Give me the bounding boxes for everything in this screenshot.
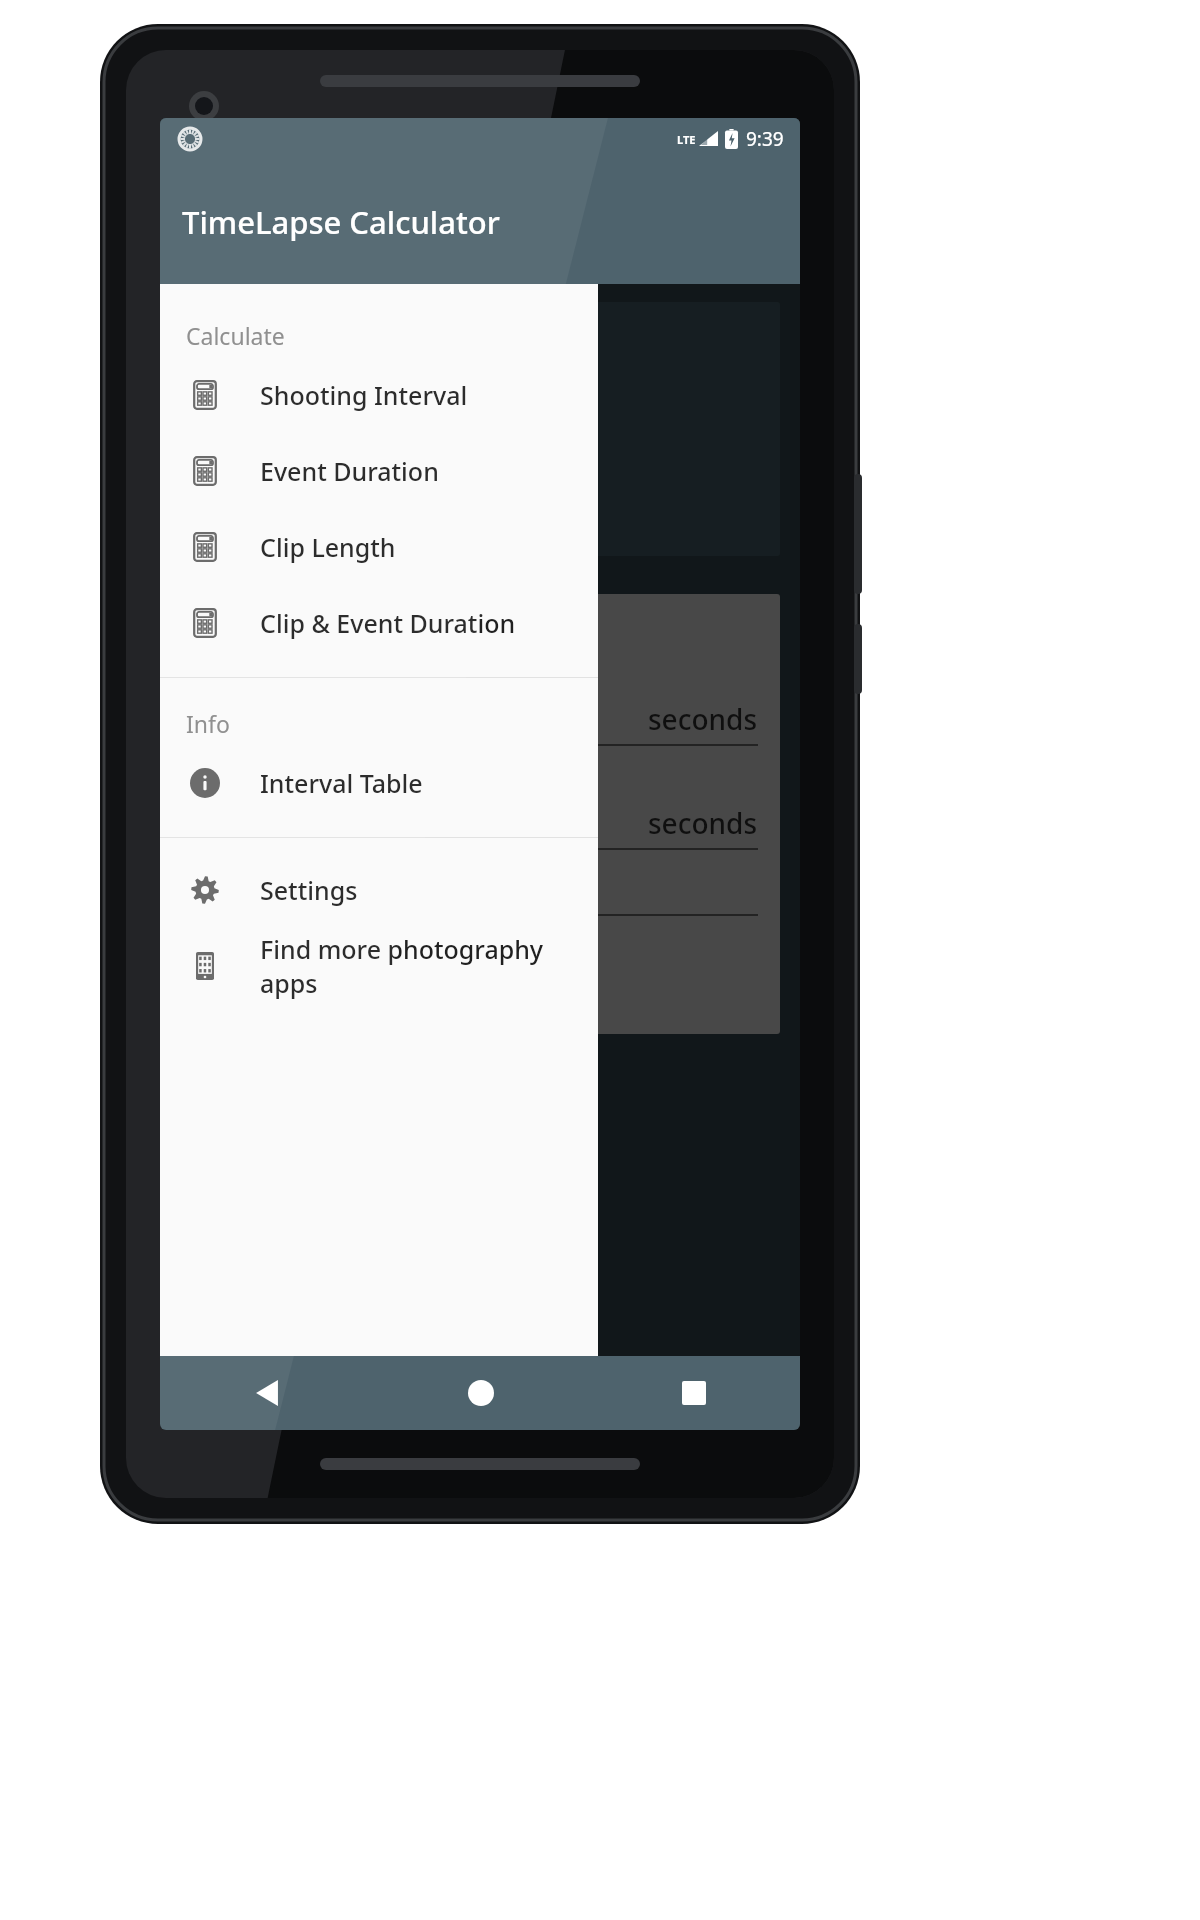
staticText: LTE (677, 132, 696, 147)
button[interactable]: Find more photography apps (160, 928, 598, 1004)
staticText: Clip & Event Duration (260, 606, 516, 640)
button[interactable]: Clip Length (160, 509, 598, 585)
staticText: TimeLapse Calculator (182, 201, 500, 243)
staticText: Find more photography apps (260, 932, 598, 1000)
staticText: Shooting Interval (260, 378, 468, 412)
staticText: Event Duration (260, 454, 439, 488)
staticText: 9:39 (746, 126, 784, 152)
button[interactable]: Home (374, 1356, 587, 1430)
staticText: seconds (648, 700, 758, 738)
staticText: seconds (648, 804, 758, 842)
staticText: Settings (260, 873, 358, 907)
button[interactable]: Clip & Event Duration (160, 585, 598, 661)
staticText: LTE (677, 132, 696, 147)
staticText: Info (186, 708, 230, 739)
button[interactable]: Recent apps (587, 1356, 800, 1430)
staticText: TimeLapse Calculator (182, 201, 500, 243)
button[interactable]: Interval Table (160, 745, 598, 821)
button[interactable]: Settings (160, 852, 598, 928)
staticText: Clip Length (260, 530, 396, 564)
button[interactable]: Shooting Interval (160, 357, 598, 433)
staticText: Calculate (186, 320, 285, 351)
button[interactable]: Back (160, 1356, 374, 1430)
button[interactable]: Event Duration (160, 433, 598, 509)
staticText: 9:39 (746, 126, 784, 152)
staticText: Interval Table (260, 766, 423, 800)
staticText: 496 MB (402, 399, 558, 459)
